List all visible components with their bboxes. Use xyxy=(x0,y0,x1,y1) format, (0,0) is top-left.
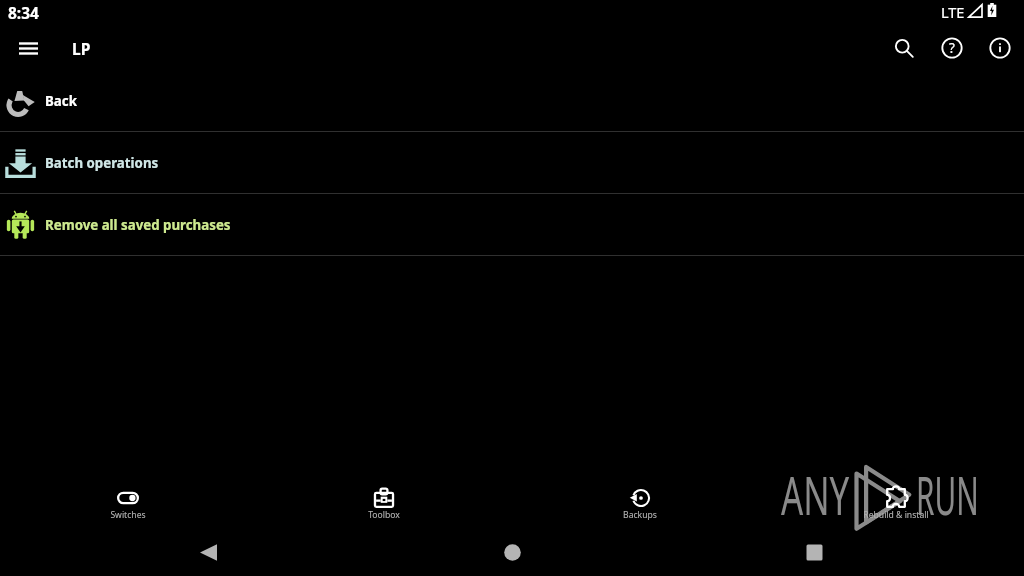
button[interactable]: Help xyxy=(928,26,976,70)
staticText: LP xyxy=(72,38,91,59)
button[interactable]: Batch operations xyxy=(0,132,1024,193)
button[interactable]: Switches xyxy=(0,480,256,534)
staticText: 8:34 xyxy=(8,2,39,23)
button[interactable]: Open navigation menu xyxy=(4,26,52,70)
staticText: Rebuild & install xyxy=(863,509,929,521)
staticText: RUN xyxy=(916,458,979,530)
button[interactable]: Home xyxy=(488,534,536,570)
staticText: Back xyxy=(45,92,77,110)
button[interactable]: Remove all saved purchases xyxy=(0,194,1024,255)
staticText: ? xyxy=(949,39,955,57)
staticText: ANY xyxy=(781,458,850,530)
button[interactable]: Recent apps xyxy=(790,534,838,570)
staticText: Switches xyxy=(110,509,146,521)
staticText: Remove all saved purchases xyxy=(45,216,231,234)
button[interactable]: Info xyxy=(976,26,1024,70)
staticText: Batch operations xyxy=(45,154,159,172)
button[interactable]: Toolbox xyxy=(256,480,512,534)
button[interactable]: Back xyxy=(0,70,1024,131)
button[interactable]: Back xyxy=(184,534,232,570)
staticText: LTE xyxy=(941,2,965,22)
button[interactable]: Search xyxy=(880,26,928,70)
staticText: Backups xyxy=(623,509,657,521)
button[interactable]: Backups xyxy=(512,480,768,534)
staticText: Toolbox xyxy=(368,509,400,521)
button[interactable]: Rebuild & install xyxy=(768,480,1024,534)
